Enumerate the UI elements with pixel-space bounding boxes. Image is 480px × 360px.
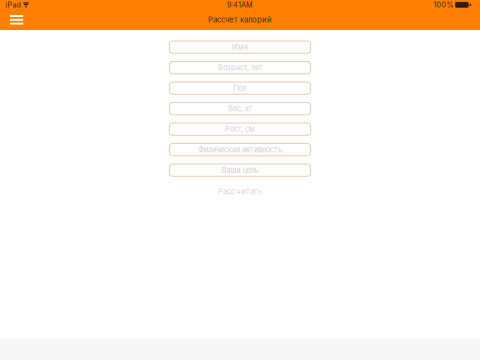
button[interactable]: Menu <box>0 10 33 30</box>
staticText: 100% <box>433 0 453 9</box>
staticText: Физическая активность <box>198 145 282 154</box>
button[interactable]: Пол <box>169 82 310 94</box>
staticText: Имя <box>232 43 248 52</box>
staticText: Рост, см <box>225 125 255 134</box>
button[interactable]: Физическая активность <box>169 143 310 156</box>
button[interactable]: Ваша цель <box>169 164 310 176</box>
button[interactable]: Рассчитать <box>169 184 310 198</box>
button[interactable]: Возраст, лет <box>169 61 310 74</box>
staticText: Пол <box>233 84 246 93</box>
staticText: Рассчитать <box>218 187 262 196</box>
button[interactable]: Имя <box>169 41 310 53</box>
staticText: 9:41AM <box>227 0 253 9</box>
staticText: Рассчет калорий <box>208 15 272 24</box>
staticText: Возраст, лет <box>218 63 262 72</box>
staticText: Ваша цель <box>221 166 258 175</box>
staticText: Вес, кг <box>228 104 252 113</box>
button[interactable]: Рост, см <box>169 123 310 135</box>
button[interactable]: Вес, кг <box>169 102 310 115</box>
staticText: iPad <box>5 0 20 9</box>
